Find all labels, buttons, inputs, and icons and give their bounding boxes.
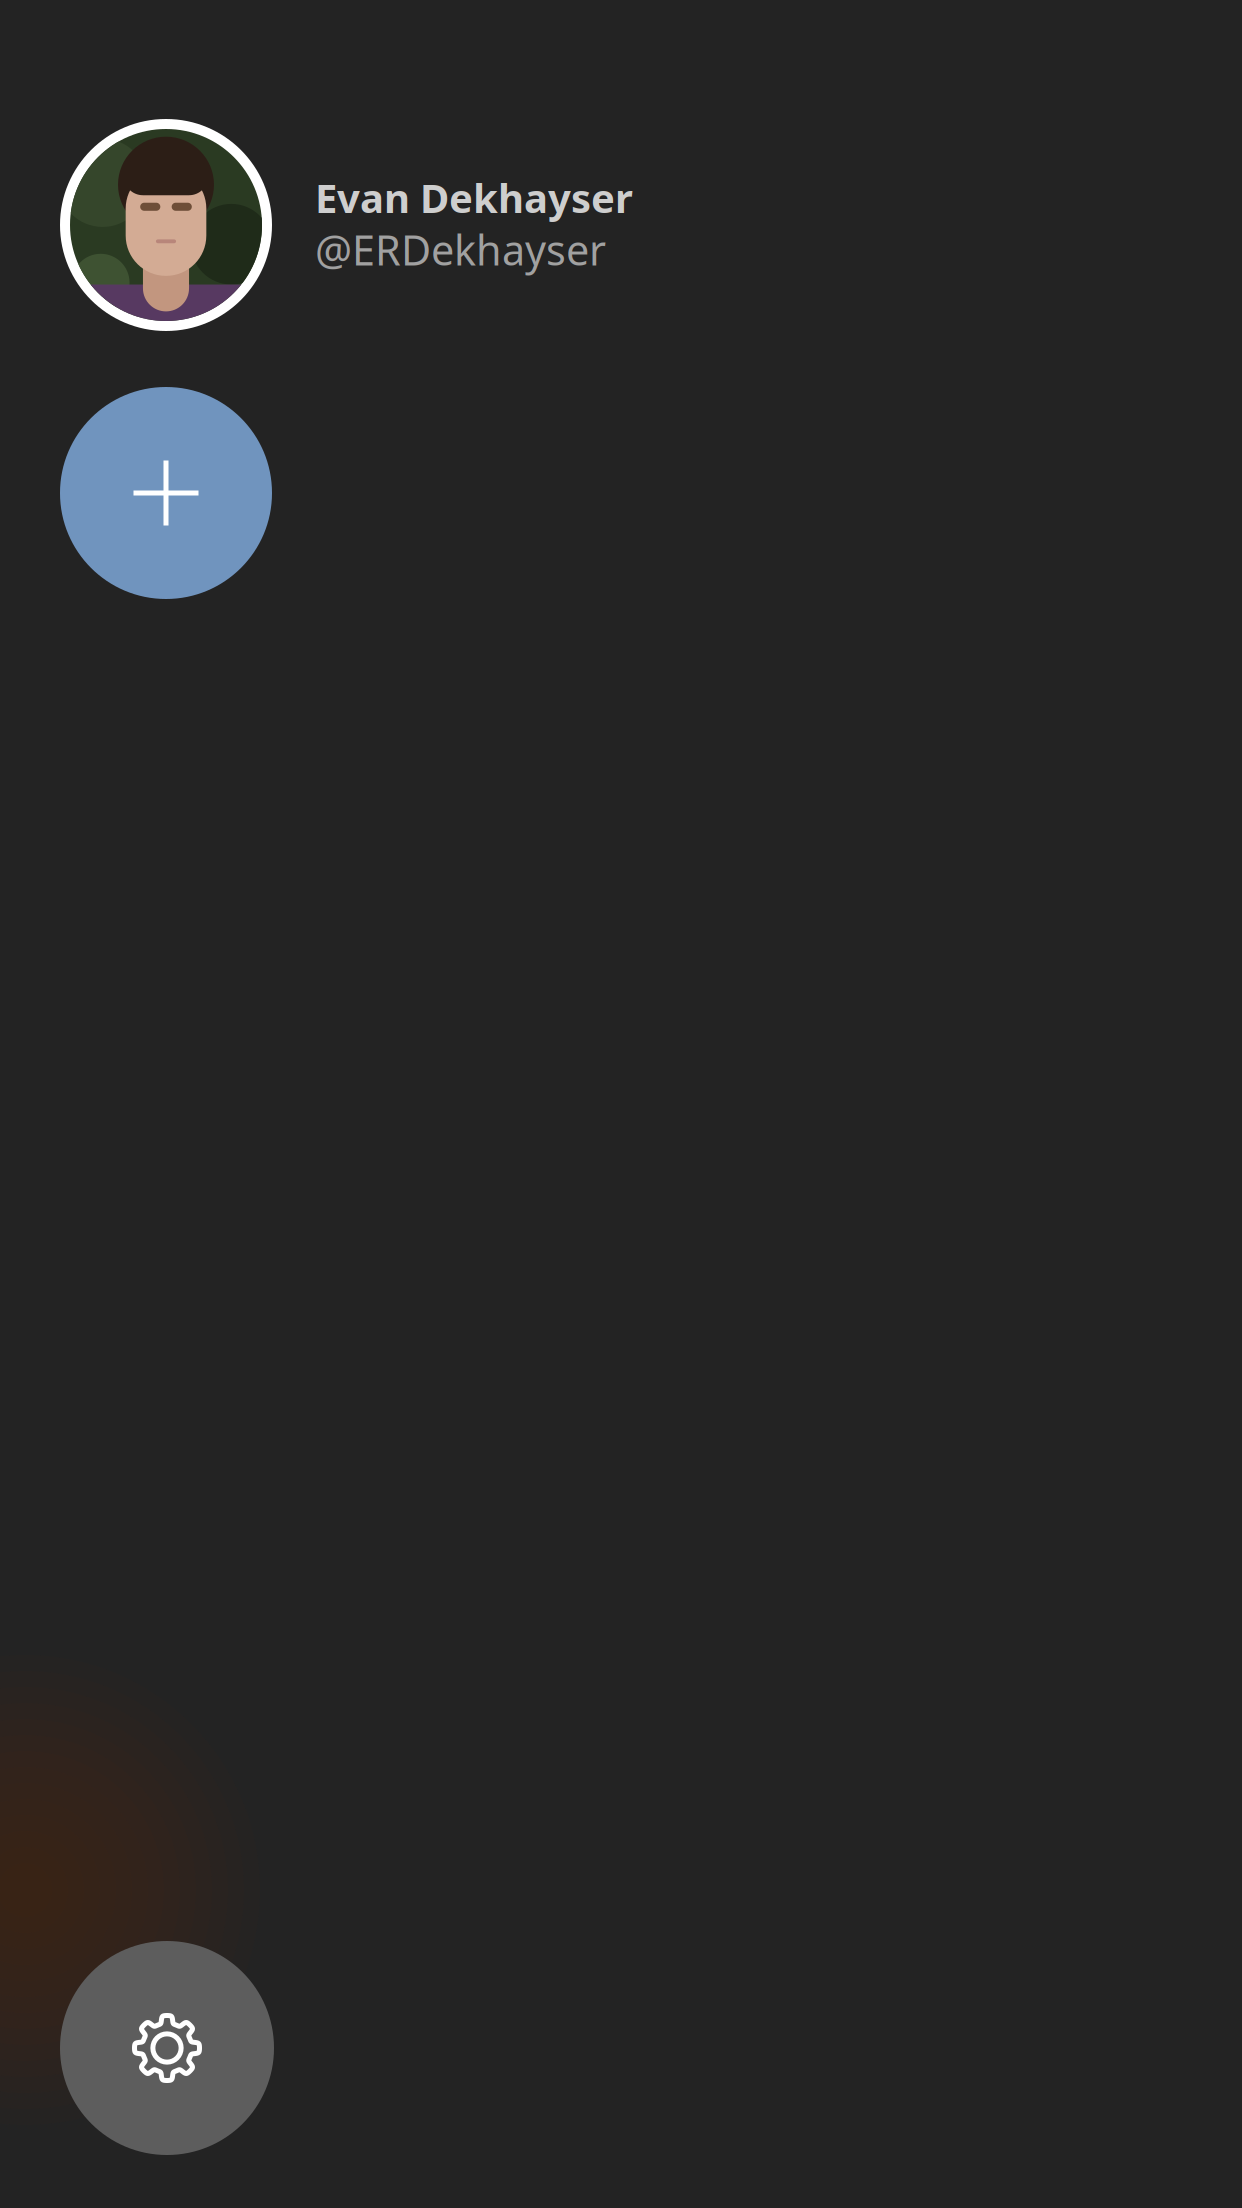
button[interactable]: Compose xyxy=(60,387,272,599)
staticText: Evan Dekhayser xyxy=(315,171,633,224)
button[interactable]: Evan Dekhayser xyxy=(60,119,1242,331)
button[interactable]: Settings xyxy=(60,1941,274,2155)
staticText: @ERDekhayser xyxy=(315,222,606,277)
